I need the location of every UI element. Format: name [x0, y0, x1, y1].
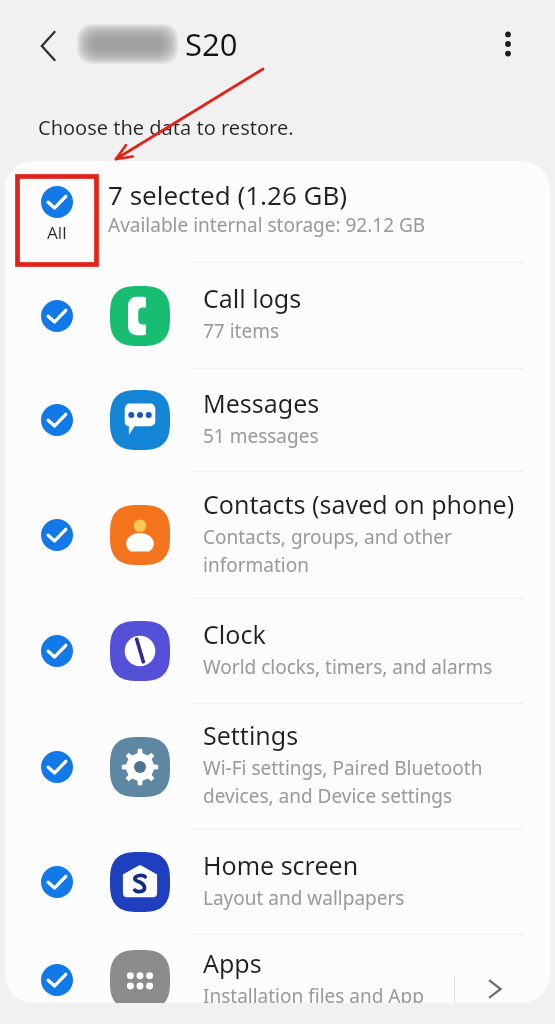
staticText: Home screen: [203, 848, 359, 882]
staticText: Contacts, groups, and other information: [203, 524, 452, 578]
staticText: 51 messages: [203, 423, 319, 449]
staticText: Choose the data to restore.: [38, 114, 294, 141]
staticText: 7 selected (1.26 GB): [108, 177, 348, 212]
button[interactable]: More options: [485, 21, 531, 67]
staticText: Layout and wallpapers: [203, 885, 405, 911]
staticText: Available internal storage: 92.12 GB: [108, 212, 426, 238]
button[interactable]: Contacts (saved on phone): [5, 472, 550, 598]
staticText: Clock: [203, 617, 266, 651]
staticText: Call logs: [203, 281, 302, 315]
button[interactable]: Call logs: [5, 263, 550, 368]
staticText: Messages: [203, 386, 320, 420]
button[interactable]: Clock: [5, 599, 550, 703]
button[interactable]: Apps: [5, 935, 550, 1003]
button[interactable]: Settings: [5, 704, 550, 829]
staticText: Settings: [203, 718, 299, 752]
button[interactable]: Home screen: [5, 830, 550, 934]
button[interactable]: Back: [27, 23, 73, 69]
staticText: S20: [185, 23, 238, 65]
staticText: World clocks, timers, and alarms: [203, 654, 493, 680]
staticText: 77 items: [203, 318, 280, 344]
staticText: Installation files and App: [203, 983, 424, 1003]
staticText: Contacts (saved on phone): [203, 487, 515, 521]
staticText: All: [47, 221, 67, 244]
button[interactable]: All: [5, 161, 550, 262]
staticText: Wi-Fi settings, Paired Bluetooth devices…: [203, 755, 483, 809]
button[interactable]: Open Apps: [455, 946, 550, 1003]
button[interactable]: Messages: [5, 369, 550, 471]
staticText: Apps: [203, 946, 262, 980]
